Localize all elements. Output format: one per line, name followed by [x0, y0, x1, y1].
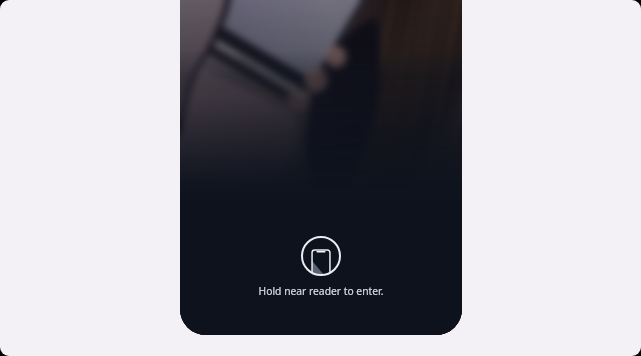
button[interactable]: Hold phone near reader [180, 0, 462, 335]
button[interactable]: Hold phone near reader [299, 234, 343, 278]
staticText: Hold near reader to enter. [180, 284, 462, 298]
